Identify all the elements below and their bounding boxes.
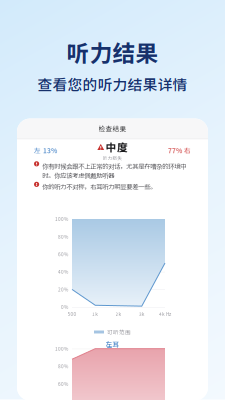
staticText: 80% [58,363,68,370]
staticText: 左 [34,145,41,155]
staticText: 60% [58,251,68,258]
staticText: 查看您的听力结果详情 [37,73,187,94]
staticText: 20% [58,286,68,293]
staticText: 4k Hz [159,311,171,317]
staticText: 你有时候会跟不上正常的对话，尤其是在嘈杂的环境中时。你应该考虑佩戴助听器 [42,161,186,180]
staticText: 听力结果 [66,35,158,68]
staticText: 3k [139,311,145,317]
staticText: 你的听力不对称，右耳听力明显要差一些。 [42,182,156,191]
staticText: 100% [55,345,68,352]
staticText: 13% [43,145,57,155]
staticText: 可听范围 [107,328,131,336]
staticText: 80% [58,233,68,240]
staticText: 右 [184,145,191,155]
staticText: 60% [58,380,68,387]
staticText: 1k [92,311,98,317]
staticText: 中度 [106,139,128,155]
staticText: 40% [58,268,68,275]
staticText: 听力损失 [102,155,122,161]
staticText: 左耳 [105,339,119,349]
staticText: 检查结果 [98,124,126,133]
staticText: 2k [115,311,121,317]
staticText: 500 [67,311,76,317]
staticText: 0% [61,304,68,310]
staticText: 77% [168,145,182,155]
staticText: 100% [55,216,68,222]
